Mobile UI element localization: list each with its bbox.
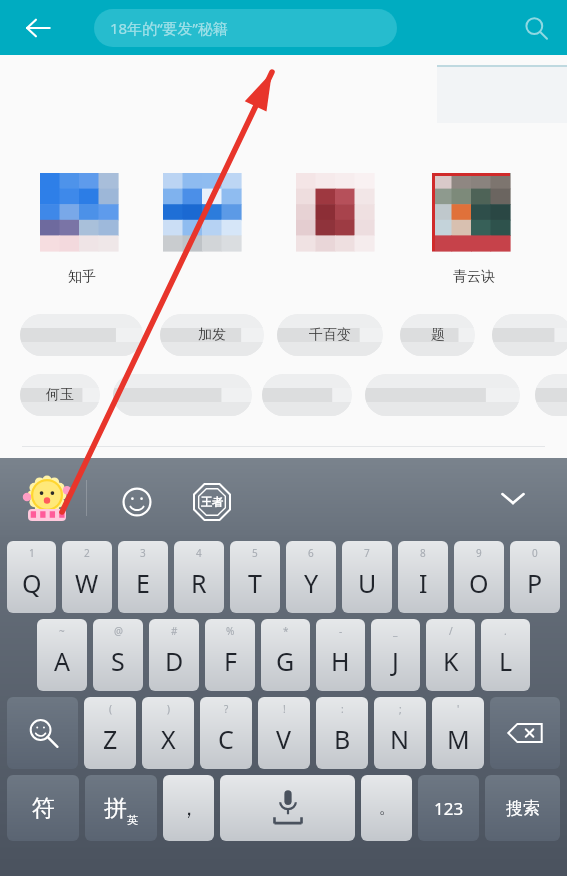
button[interactable]: 8 (398, 541, 448, 613)
button[interactable]: 123 (418, 775, 479, 841)
staticText: V (276, 722, 292, 756)
staticText: F (224, 644, 237, 678)
button[interactable] (20, 314, 143, 356)
staticText: Q (22, 566, 42, 600)
staticText: 加发 (198, 326, 226, 344)
staticText: 千百变 (309, 326, 351, 344)
button[interactable]: / (426, 619, 475, 691)
button[interactable] (113, 374, 252, 416)
button[interactable]: 。 (361, 775, 412, 841)
staticText: 8 (420, 546, 426, 560)
button[interactable]: 7 (342, 541, 392, 613)
staticText: 1 (29, 546, 35, 560)
button[interactable]: 青云诀 (432, 165, 516, 290)
button[interactable]: 符 (7, 775, 79, 841)
button[interactable]: ; (374, 697, 426, 769)
button[interactable]: ( (84, 697, 136, 769)
button[interactable]: ) (142, 697, 194, 769)
staticText: A (54, 644, 70, 678)
staticText: 王者 (201, 495, 223, 509)
button[interactable] (163, 165, 247, 290)
button[interactable]: % (205, 619, 255, 691)
button[interactable]: Game sticker (188, 478, 236, 526)
button[interactable]: ， (163, 775, 214, 841)
staticText: - (339, 624, 343, 638)
staticText: E (136, 566, 150, 600)
button[interactable]: 何玉 (20, 374, 100, 416)
staticText: 9 (476, 546, 482, 560)
staticText: P (527, 566, 543, 600)
button[interactable]: ! (258, 697, 310, 769)
staticText: 应用 (25, 474, 59, 495)
staticText: 何玉 (46, 386, 74, 404)
staticText: M (447, 722, 470, 756)
button[interactable] (535, 374, 567, 416)
button[interactable]: * (261, 619, 310, 691)
button[interactable]: - (316, 619, 365, 691)
staticText: : (341, 702, 344, 716)
button[interactable]: # (149, 619, 199, 691)
button[interactable] (296, 165, 380, 290)
button[interactable]: ' (432, 697, 484, 769)
button[interactable]: Emoji search (7, 697, 78, 769)
button[interactable]: Sticker (22, 474, 72, 524)
button[interactable]: @ (93, 619, 143, 691)
staticText: ? (224, 702, 229, 716)
staticText: % (226, 624, 235, 638)
staticText: * (283, 624, 289, 638)
button[interactable] (262, 374, 352, 416)
button[interactable]: 5 (230, 541, 280, 613)
button[interactable]: . (481, 619, 530, 691)
staticText: ' (457, 702, 460, 716)
staticText: 青云诀 (432, 268, 516, 286)
staticText: 0 (532, 546, 538, 560)
staticText: O (469, 566, 489, 600)
staticText: R (191, 566, 207, 600)
staticText: @ (114, 624, 123, 638)
staticText: 符 (32, 794, 55, 823)
button[interactable]: Emoji (113, 478, 161, 526)
staticText: 18年的“要发”秘籍 (110, 18, 228, 38)
staticText: ; (399, 702, 402, 716)
staticText: ) (167, 702, 170, 716)
button[interactable] (365, 374, 520, 416)
staticText: N (390, 722, 410, 756)
staticText: S (111, 644, 125, 678)
button[interactable]: Backspace (490, 697, 560, 769)
staticText: . (504, 624, 507, 638)
staticText: 123 (434, 797, 464, 820)
button[interactable]: _ (371, 619, 420, 691)
button[interactable]: : (316, 697, 368, 769)
button[interactable]: 搜索 (485, 775, 560, 841)
staticText: 5 (252, 546, 258, 560)
button[interactable]: Space, voice input (220, 775, 355, 841)
staticText: ~ (59, 624, 65, 638)
button[interactable]: Hide keyboard (489, 474, 537, 522)
staticText: 英 (127, 813, 138, 827)
button[interactable]: 1 (7, 541, 56, 613)
staticText: L (499, 644, 513, 678)
button[interactable]: 题 (400, 314, 475, 356)
button[interactable]: ? (200, 697, 252, 769)
staticText: X (161, 722, 176, 756)
button[interactable]: Back (11, 1, 65, 55)
button[interactable]: 18年的“要发”秘籍 (94, 9, 397, 47)
button[interactable]: 2 (62, 541, 112, 613)
button[interactable]: Search (512, 4, 560, 52)
staticText: 搜索 (506, 798, 540, 819)
button[interactable]: 3 (118, 541, 168, 613)
button[interactable]: 千百变 (277, 314, 383, 356)
staticText: 2 (84, 546, 90, 560)
button[interactable]: 9 (454, 541, 504, 613)
button[interactable]: 知乎 (40, 165, 124, 290)
button[interactable]: 4 (174, 541, 224, 613)
button[interactable] (492, 314, 567, 356)
button[interactable]: ~ (37, 619, 87, 691)
button[interactable]: 加发 (160, 314, 264, 356)
staticText: ( (109, 702, 112, 716)
staticText: W (75, 566, 99, 600)
button[interactable]: 6 (286, 541, 336, 613)
button[interactable]: 0 (510, 541, 560, 613)
staticText: 4 (196, 546, 202, 560)
button[interactable]: 拼 (85, 775, 157, 841)
